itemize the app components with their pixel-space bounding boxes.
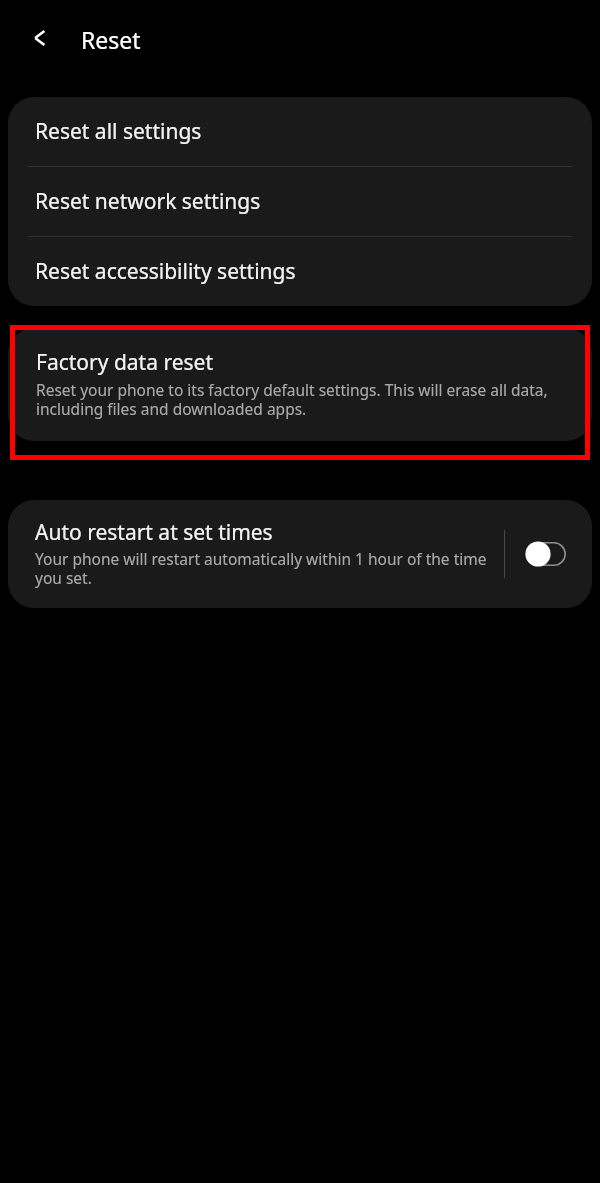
button[interactable]: Auto restart at set times toggle	[518, 534, 574, 574]
button[interactable]: Back	[20, 18, 60, 58]
button[interactable]: Reset accessibility settings	[8, 237, 592, 306]
button[interactable]: Factory data reset	[8, 328, 592, 441]
staticText: Reset network settings	[35, 189, 261, 215]
staticText: Reset all settings	[35, 119, 202, 145]
button[interactable]: Auto restart at set times	[8, 500, 592, 608]
button[interactable]: Reset network settings	[8, 167, 592, 236]
staticText: Reset your phone to its factory default …	[36, 381, 568, 419]
staticText: Reset accessibility settings	[35, 259, 296, 285]
staticText: Auto restart at set times	[35, 520, 273, 546]
staticText: Your phone will restart automatically wi…	[35, 550, 494, 588]
button[interactable]: Reset all settings	[8, 97, 592, 166]
staticText: Reset	[81, 24, 141, 55]
staticText: Factory data reset	[36, 350, 213, 376]
